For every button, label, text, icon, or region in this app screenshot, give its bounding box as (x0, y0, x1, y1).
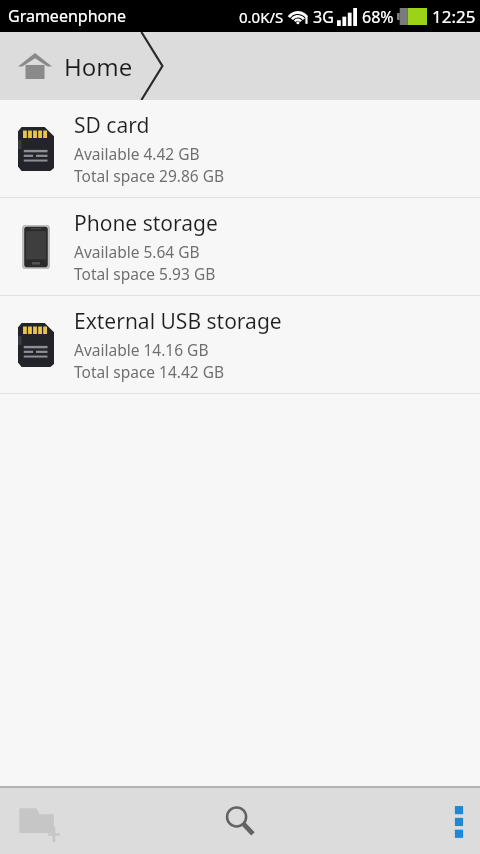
button[interactable]: Search (160, 788, 320, 854)
button[interactable]: Home (0, 32, 147, 100)
staticText: Available 5.64 GB (74, 241, 200, 262)
staticText: Total space 14.42 GB (74, 361, 225, 382)
staticText: Grameenphone (8, 5, 127, 27)
button[interactable]: Phone storage (0, 198, 480, 295)
staticText: Phone storage (74, 209, 218, 238)
staticText: SD card (74, 111, 150, 140)
staticText: 3G (313, 6, 334, 28)
staticText: Home (64, 50, 133, 83)
staticText: 12:25 (432, 5, 476, 28)
staticText: Available 14.16 GB (74, 339, 209, 360)
staticText: Total space 5.93 GB (74, 263, 216, 284)
button[interactable]: More options (320, 788, 480, 854)
staticText: External USB storage (74, 307, 282, 336)
button[interactable]: External USB storage (0, 296, 480, 393)
staticText: 68% (362, 6, 394, 28)
button[interactable]: New folder (0, 788, 160, 854)
staticText: 0.0K/S (239, 7, 284, 27)
staticText: Available 4.42 GB (74, 143, 200, 164)
button[interactable]: SD card (0, 100, 480, 197)
staticText: Total space 29.86 GB (74, 165, 225, 186)
